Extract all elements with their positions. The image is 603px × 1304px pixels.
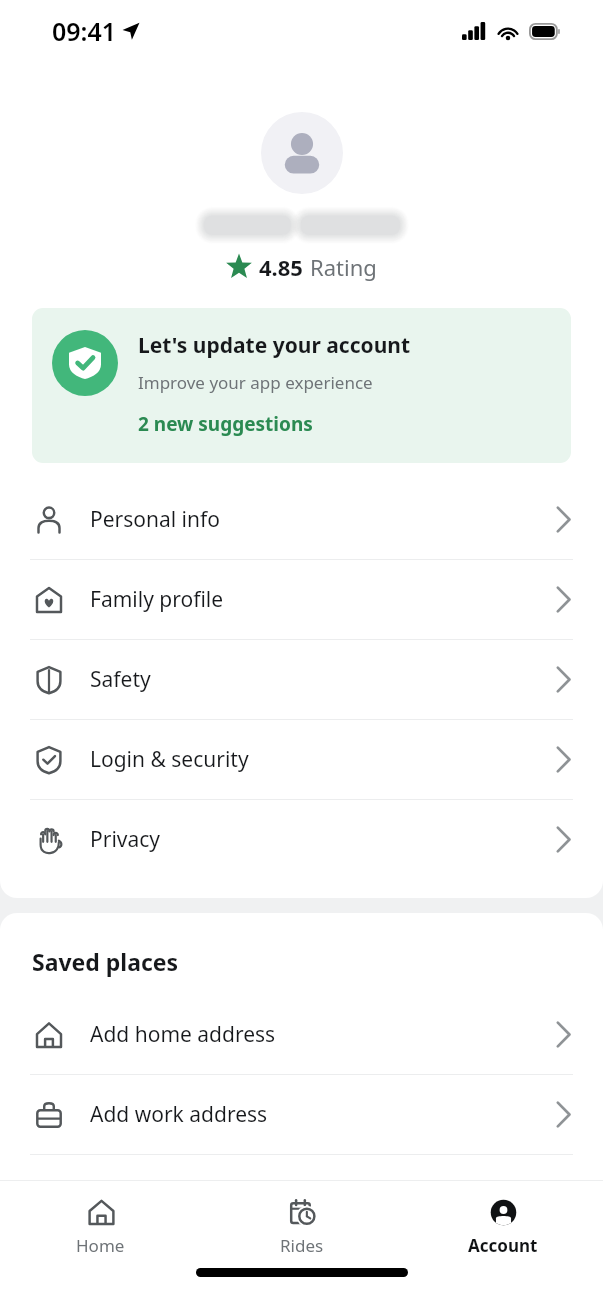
button[interactable]: Privacy — [0, 800, 603, 879]
other: Rides — [288, 1198, 317, 1227]
staticText: Add work address — [90, 1100, 556, 1129]
other: Account — [489, 1198, 518, 1227]
button[interactable]: Home — [0, 1181, 201, 1263]
other: Home — [87, 1198, 116, 1227]
staticText: 09:41 — [52, 14, 117, 48]
staticText: Login & security — [90, 745, 556, 774]
button[interactable]: Add home address — [0, 995, 603, 1074]
button[interactable]: Safety — [0, 640, 603, 719]
button[interactable]: Family profile — [0, 560, 603, 639]
staticText: Account — [468, 1234, 538, 1257]
staticText: Safety — [90, 665, 556, 694]
button[interactable]: Account — [402, 1181, 603, 1263]
staticText: Add home address — [90, 1020, 556, 1049]
button[interactable]: Rides — [201, 1181, 402, 1263]
staticText: Improve your app experience — [138, 371, 373, 394]
button[interactable]: Add work address — [0, 1075, 603, 1154]
staticText: 4.85 — [259, 252, 303, 282]
staticText: Home — [76, 1234, 125, 1257]
staticText: Family profile — [90, 585, 556, 614]
button[interactable]: Personal info — [0, 480, 603, 559]
staticText: Let's update your account — [138, 331, 411, 360]
staticText: Saved places — [32, 946, 179, 977]
staticText: Personal info — [90, 505, 556, 534]
button[interactable]: Login & security — [0, 720, 603, 799]
staticText: Rating — [310, 252, 377, 282]
staticText: Privacy — [90, 825, 556, 854]
staticText: 2 new suggestions — [138, 411, 313, 437]
staticText: Rides — [280, 1234, 324, 1257]
button[interactable]: Let's update your account — [32, 308, 571, 463]
